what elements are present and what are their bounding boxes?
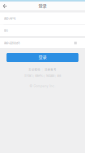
button[interactable]: 登录 <box>6 53 78 62</box>
staticText: 注册账号 <box>44 67 56 71</box>
staticText: 关于我们 | 帮助中心 | 联系客服 | 更多 <box>24 74 61 77</box>
staticText: 登录 <box>38 54 46 60</box>
staticText: 请输入图形验证码 <box>3 41 19 45</box>
staticText: 请输入用户名 <box>3 17 15 20</box>
staticText: © Company Inc. <box>29 84 55 88</box>
button[interactable]: 注册账号 <box>44 67 56 71</box>
button[interactable]: Refresh verification code <box>71 40 80 46</box>
staticText: 登录 <box>38 3 46 9</box>
staticText: 忘记密码 <box>29 67 41 71</box>
button[interactable]: 忘记密码 <box>29 67 41 71</box>
staticText: 密码 <box>3 29 7 32</box>
button[interactable]: Back <box>0 2 9 10</box>
